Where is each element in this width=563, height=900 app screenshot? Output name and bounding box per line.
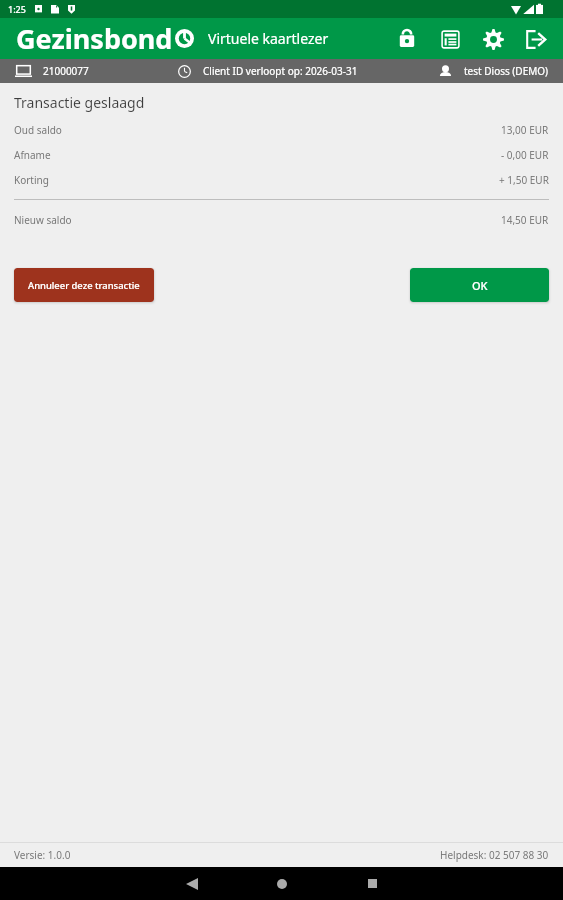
button[interactable]: Annuleer deze transactie [14,268,154,302]
staticText: Annuleer deze transactie [28,279,140,292]
button[interactable]: Home [258,867,306,900]
staticText: + 1,50 EUR [499,173,549,187]
staticText: Korting [14,173,49,187]
staticText: Virtuele kaartlezer [208,29,329,48]
staticText: Helpdesk: 02 507 88 30 [440,848,549,862]
staticText: 13,00 EUR [501,123,549,137]
staticText: 14,50 EUR [501,213,549,227]
button[interactable]: Lock [392,24,422,54]
staticText: test Dioss (DEMO) [464,64,549,78]
staticText: 21000077 [43,64,89,78]
button[interactable]: Log out [521,24,551,54]
staticText: Afname [14,148,51,162]
staticText: 1:25 [8,3,26,15]
button[interactable]: Settings [478,24,508,54]
button[interactable]: OK [410,268,549,302]
button[interactable]: Back [168,867,216,900]
staticText: - 0,00 EUR [501,148,549,162]
staticText: Gezinsbond [16,20,173,57]
staticText: OK [472,278,488,293]
button[interactable]: Recent apps [348,867,396,900]
staticText: Transactie geslaagd [14,93,145,112]
button[interactable]: Transactions [435,24,465,54]
staticText: Nieuw saldo [14,213,72,227]
staticText: Oud saldo [14,123,62,137]
staticText: Client ID verloopt op: 2026-03-31 [203,64,358,78]
staticText: Versie: 1.0.0 [14,848,71,862]
